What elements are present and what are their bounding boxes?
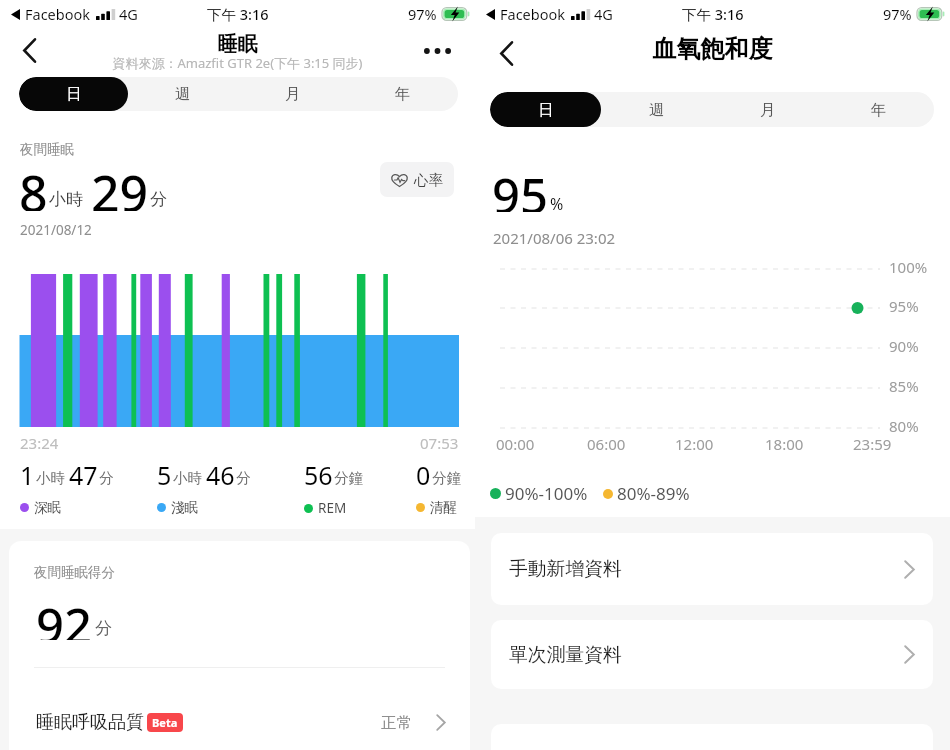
staticText: 8 <box>19 159 48 211</box>
staticText: 18:00 <box>765 434 804 454</box>
staticText: Facebook <box>500 4 566 24</box>
staticText: 46 <box>206 458 235 488</box>
staticText: 淺眠 <box>171 499 198 516</box>
staticText: 月 <box>760 100 776 120</box>
staticText: 手動新增資料 <box>509 557 622 581</box>
button[interactable]: 手動新增資料 <box>491 533 933 605</box>
staticText: 12:00 <box>675 434 714 454</box>
staticText: 月 <box>285 84 301 104</box>
staticText: 夜間睡眠 <box>20 141 74 158</box>
staticText: 日 <box>538 100 554 120</box>
staticText: 2021/08/12 <box>20 221 92 239</box>
staticText: 80% <box>889 416 919 436</box>
staticText: 29 <box>91 159 149 211</box>
staticText: 23:59 <box>853 434 892 454</box>
staticText: 5 <box>157 458 172 488</box>
staticText: 週 <box>175 84 191 104</box>
staticText: 85% <box>889 376 919 396</box>
staticText: 4G <box>119 4 138 24</box>
staticText: 夜間睡眠得分 <box>34 564 115 581</box>
staticText: 正常 <box>381 713 412 733</box>
staticText: 週 <box>649 100 665 120</box>
staticText: 100% <box>889 257 928 277</box>
staticText: 小時 <box>36 469 65 487</box>
staticText: 分鐘 <box>432 469 461 487</box>
staticText: 06:00 <box>587 434 626 454</box>
staticText: 1 <box>20 458 35 488</box>
button[interactable]: Back <box>9 30 49 70</box>
staticText: 92 <box>36 592 93 640</box>
button[interactable]: 年 <box>823 92 934 127</box>
staticText: 資料來源：Amazfit GTR 2e(下午 3:15 同步) <box>0 54 475 72</box>
button[interactable]: 月 <box>238 77 348 111</box>
button[interactable]: 年 <box>348 77 458 111</box>
button[interactable]: 單次測量資料 <box>491 620 933 689</box>
staticText: 0 <box>416 458 431 488</box>
button[interactable]: 週 <box>128 77 238 111</box>
staticText: 分 <box>99 469 114 487</box>
staticText: % <box>550 193 564 215</box>
staticText: 小時 <box>173 469 202 487</box>
staticText: 年 <box>395 84 411 104</box>
staticText: 56 <box>304 458 333 488</box>
staticText: 95% <box>889 296 919 316</box>
button[interactable]: 週 <box>601 92 712 127</box>
staticText: 睡眠 <box>0 32 475 57</box>
button[interactable]: More options <box>418 32 456 70</box>
staticText: 95 <box>492 162 549 212</box>
button[interactable]: 日 <box>490 92 601 127</box>
staticText: 90% <box>889 336 919 356</box>
staticText: 80%-89% <box>617 482 690 505</box>
staticText: 單次測量資料 <box>509 643 622 667</box>
button[interactable]: 月 <box>712 92 823 127</box>
button[interactable]: 心率 <box>380 162 454 197</box>
staticText: 年 <box>871 100 887 120</box>
staticText: 下午 3:16 <box>682 4 744 24</box>
staticText: 血氧飽和度 <box>475 34 950 64</box>
staticText: Beta <box>152 715 178 730</box>
staticText: 4G <box>594 4 613 24</box>
staticText: 清醒 <box>430 499 457 516</box>
button[interactable]: 日 <box>19 77 128 111</box>
staticText: 00:00 <box>496 434 535 454</box>
staticText: 90%-100% <box>505 482 588 505</box>
staticText: 2021/08/06 23:02 <box>493 228 616 248</box>
staticText: 47 <box>69 458 98 488</box>
staticText: 心率 <box>414 171 443 189</box>
button[interactable]: 睡眠呼吸品質 <box>9 699 470 746</box>
staticText: 23:24 <box>20 433 59 453</box>
staticText: 下午 3:16 <box>207 4 269 24</box>
staticText: 日 <box>66 84 82 104</box>
staticText: 分 <box>95 618 112 639</box>
staticText: 分 <box>150 189 167 210</box>
staticText: 97% <box>883 4 912 24</box>
staticText: 07:53 <box>420 433 459 453</box>
staticText: 深眠 <box>34 499 61 516</box>
staticText: 97% <box>408 4 437 24</box>
staticText: 睡眠呼吸品質 <box>36 711 144 734</box>
staticText: REM <box>318 499 347 517</box>
staticText: 分 <box>236 469 251 487</box>
staticText: Facebook <box>25 4 91 24</box>
button[interactable]: Back <box>486 33 526 73</box>
staticText: 小時 <box>49 189 83 210</box>
staticText: 分鐘 <box>334 469 363 487</box>
